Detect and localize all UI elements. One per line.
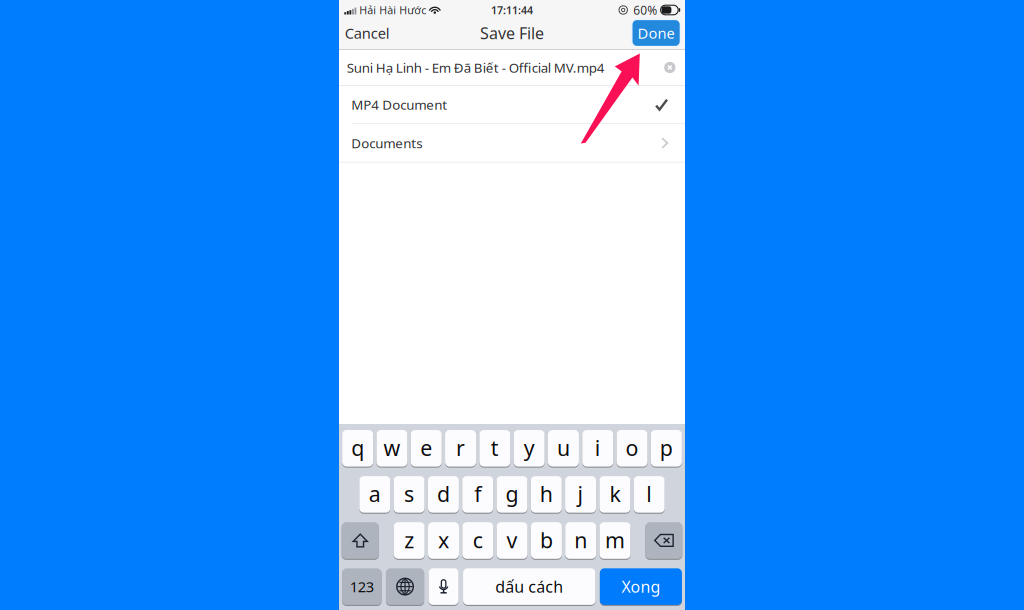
button[interactable]: d <box>428 476 459 514</box>
button[interactable]: Next keyboard <box>386 568 424 606</box>
button[interactable]: x <box>428 522 459 560</box>
button[interactable]: Dictation <box>428 568 459 606</box>
button[interactable]: a <box>359 476 390 514</box>
button[interactable]: i <box>582 430 613 468</box>
staticText: 123 <box>350 577 374 596</box>
staticText: f <box>474 480 481 508</box>
staticText: q <box>351 433 364 462</box>
staticText: h <box>540 480 553 508</box>
staticText: z <box>404 526 414 554</box>
button[interactable]: r <box>445 430 476 468</box>
button[interactable]: Documents <box>339 124 685 162</box>
staticText: y <box>524 433 535 462</box>
button[interactable]: dấu cách <box>463 568 595 606</box>
button[interactable]: c <box>462 522 493 560</box>
staticText: i <box>595 433 601 462</box>
staticText: 60% <box>633 2 657 18</box>
button[interactable]: l <box>634 476 665 514</box>
staticText: MP4 Document <box>351 96 447 113</box>
button[interactable]: Shift <box>342 522 379 560</box>
staticText: n <box>574 526 587 554</box>
button[interactable]: u <box>548 430 579 468</box>
staticText: w <box>383 433 400 462</box>
staticText: d <box>437 480 450 508</box>
button[interactable]: v <box>497 522 528 560</box>
staticText: m <box>605 526 625 554</box>
staticText: dấu cách <box>495 576 563 597</box>
button[interactable]: 123 <box>342 568 381 606</box>
button[interactable]: w <box>376 430 407 468</box>
button[interactable]: Xong <box>600 568 682 606</box>
staticText: Cancel <box>345 23 390 43</box>
button[interactable]: n <box>565 522 596 560</box>
button[interactable]: e <box>411 430 442 468</box>
staticText: 17:11:44 <box>491 3 533 17</box>
button[interactable]: Cancel <box>339 20 395 46</box>
button[interactable]: q <box>342 430 373 468</box>
staticText: o <box>625 433 638 462</box>
staticText: l <box>646 480 652 508</box>
button[interactable]: MP4 Document <box>339 86 685 123</box>
staticText: Xong <box>621 576 660 597</box>
staticText: Documents <box>351 134 422 152</box>
staticText: v <box>507 526 518 554</box>
staticText: b <box>540 526 553 554</box>
button[interactable]: Delete <box>645 522 682 560</box>
button[interactable]: t <box>479 430 510 468</box>
staticText: s <box>404 480 414 508</box>
staticText: r <box>456 433 465 462</box>
button[interactable]: m <box>599 522 630 560</box>
button[interactable]: z <box>394 522 425 560</box>
button[interactable]: f <box>462 476 493 514</box>
button[interactable]: h <box>531 476 562 514</box>
staticText: p <box>660 433 673 462</box>
staticText: t <box>491 433 499 462</box>
staticText: a <box>369 480 381 508</box>
staticText: u <box>557 433 570 462</box>
button[interactable]: o <box>616 430 647 468</box>
staticText: c <box>473 526 483 554</box>
button[interactable]: y <box>514 430 545 468</box>
staticText: j <box>578 480 584 508</box>
button[interactable]: j <box>565 476 596 514</box>
button[interactable]: k <box>599 476 630 514</box>
button[interactable]: g <box>496 476 527 514</box>
staticText: k <box>609 480 620 508</box>
staticText: g <box>505 480 518 508</box>
button[interactable]: Done <box>631 18 681 47</box>
staticText: x <box>438 526 449 554</box>
button[interactable]: b <box>531 522 562 560</box>
staticText: Done <box>638 23 675 43</box>
staticText: e <box>420 433 432 462</box>
button[interactable]: s <box>394 476 425 514</box>
staticText: Suni Hạ Linh - Em Đã Biết - Official MV.… <box>347 59 605 76</box>
button[interactable]: p <box>651 430 682 468</box>
staticText: Save File <box>480 22 544 44</box>
staticText: Hải Hài Hước <box>359 3 426 17</box>
